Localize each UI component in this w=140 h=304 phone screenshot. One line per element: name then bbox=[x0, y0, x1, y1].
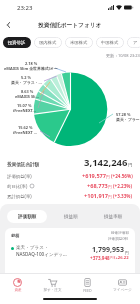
staticText: 57.28 % bbox=[116, 112, 131, 117]
button[interactable]: 評価額順 bbox=[7, 210, 47, 223]
button[interactable]: 米国株式 bbox=[65, 37, 93, 48]
staticText: 投資信託ポートフォリオ bbox=[38, 22, 102, 29]
button[interactable]: 損益順 bbox=[51, 210, 90, 223]
staticText: 円 bbox=[108, 194, 112, 199]
staticText: 前日比(率) bbox=[7, 183, 28, 189]
staticText: NASDAQ-100インデッ… bbox=[16, 251, 67, 257]
staticText: 国内株式 bbox=[39, 40, 57, 45]
staticText: FEED bbox=[83, 288, 92, 293]
button[interactable]: 投資信託 bbox=[3, 37, 31, 48]
staticText: 円 bbox=[128, 162, 133, 168]
staticText: 米国株式 bbox=[70, 40, 88, 45]
staticText: マイページ bbox=[113, 288, 132, 293]
button[interactable]: 資産 bbox=[0, 274, 35, 296]
staticText: (+26.22 bbox=[114, 255, 129, 261]
staticText: 投資信託合計額 bbox=[7, 162, 40, 168]
staticText: 15.07 % bbox=[17, 103, 32, 108]
staticText: eMAXIS Sli… bbox=[15, 94, 39, 99]
button[interactable]: Back bbox=[0, 17, 17, 33]
staticText: +373,948 bbox=[90, 255, 110, 261]
button[interactable]: マイページ bbox=[105, 274, 140, 296]
button[interactable]: 損益率順 bbox=[94, 210, 133, 223]
staticText: 楽天・プラス・… bbox=[11, 80, 42, 85]
button[interactable]: 楽天・プラス・ bbox=[11, 245, 129, 261]
staticText: 3,142,246 bbox=[84, 156, 128, 169]
staticText: +619,577 bbox=[82, 172, 106, 180]
button[interactable]: ア bbox=[127, 37, 140, 48]
staticText: 損益順 bbox=[64, 214, 78, 220]
button[interactable]: 中国株式 bbox=[96, 37, 124, 48]
staticText: 5.2 % bbox=[21, 75, 32, 80]
staticText: 円 bbox=[110, 256, 114, 261]
staticText: (+3.33%) bbox=[113, 193, 133, 199]
staticText: 円 bbox=[125, 250, 129, 255]
staticText: 銘柄 bbox=[11, 233, 20, 238]
button[interactable]: 探す・注文 bbox=[35, 274, 70, 296]
staticText: 楽天・プラス・ bbox=[16, 245, 49, 251]
staticText: 投資信託 bbox=[8, 40, 26, 45]
staticText: 更新：10/08 23:23 bbox=[106, 53, 140, 58]
staticText: iFreeNEXT … bbox=[13, 130, 38, 135]
staticText: 2.18 % bbox=[25, 61, 38, 66]
staticText: +68,773 bbox=[87, 182, 108, 190]
staticText: 評価額順 bbox=[18, 214, 37, 220]
staticText: 中国株式 bbox=[101, 40, 119, 45]
staticText: 累計損益(率) bbox=[7, 193, 32, 199]
staticText: eMAXIS Slim 全世界株式(オー bbox=[4, 66, 58, 71]
staticText: 探す・注文 bbox=[43, 288, 62, 293]
staticText: 評価損益(率) bbox=[108, 236, 129, 241]
button[interactable]: 国内株式 bbox=[34, 37, 62, 48]
staticText: (+2.23%) bbox=[113, 183, 133, 189]
staticText: iFreeNEXT… bbox=[13, 108, 36, 113]
staticText: 23:23 bbox=[17, 4, 33, 12]
staticText: 円 bbox=[106, 174, 110, 179]
staticText: 時価評価額 bbox=[111, 231, 129, 236]
staticText: 1,799,953 bbox=[92, 245, 125, 255]
staticText: 損益率順 bbox=[104, 214, 123, 220]
staticText: 8.63 % bbox=[21, 89, 34, 94]
staticText: 評価損益(率) bbox=[7, 173, 32, 179]
staticText: 円 bbox=[108, 184, 112, 189]
staticText: +101,917 bbox=[84, 192, 108, 200]
staticText: 資産 bbox=[14, 288, 22, 293]
button[interactable]: FEED bbox=[70, 274, 105, 296]
staticText: 15.62 % bbox=[18, 125, 33, 130]
staticText: (+24.56%) bbox=[111, 173, 133, 179]
staticText: ア bbox=[133, 40, 138, 45]
staticText: 楽天・プラー bbox=[116, 117, 140, 122]
